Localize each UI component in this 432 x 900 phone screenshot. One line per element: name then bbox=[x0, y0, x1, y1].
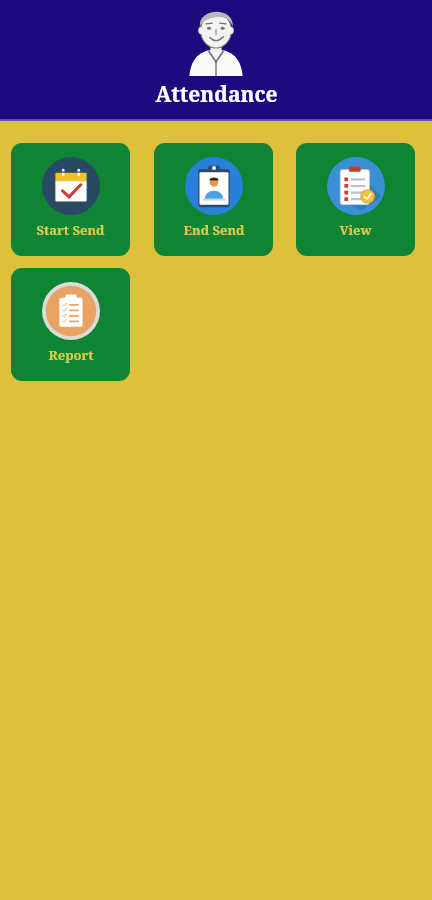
button[interactable]: Report bbox=[11, 268, 130, 381]
other: Report bbox=[42, 282, 100, 340]
staticText: End Send bbox=[183, 221, 245, 239]
other: End Send bbox=[185, 157, 243, 215]
staticText: Attendance bbox=[155, 80, 278, 109]
staticText: Report bbox=[48, 346, 94, 364]
other: View bbox=[327, 157, 385, 215]
staticText: Start Send bbox=[36, 221, 105, 239]
other: Start Send bbox=[42, 157, 100, 215]
button[interactable]: View bbox=[296, 143, 415, 256]
button[interactable]: Start Send bbox=[11, 143, 130, 256]
button[interactable]: End Send bbox=[154, 143, 273, 256]
staticText: View bbox=[339, 221, 372, 239]
